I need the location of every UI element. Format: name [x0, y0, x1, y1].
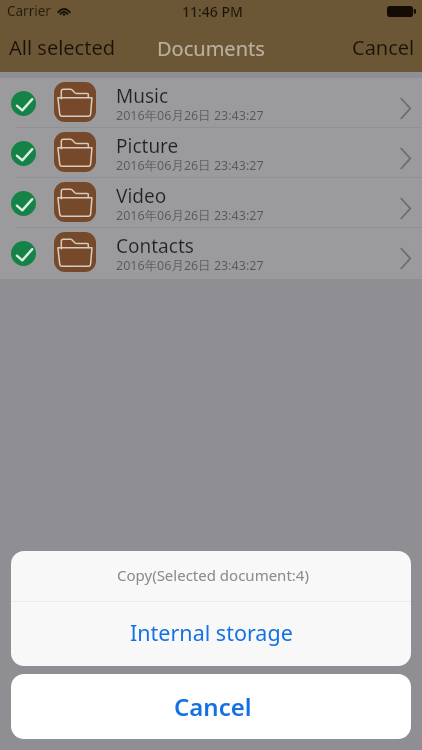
button[interactable]: Music — [0, 78, 422, 128]
staticText: Carrier — [7, 2, 51, 20]
staticText: Music — [116, 83, 169, 109]
button[interactable]: Picture — [0, 128, 422, 178]
button[interactable]: Contacts — [0, 228, 422, 278]
button[interactable]: Internal storage — [11, 602, 411, 666]
staticText: Internal storage — [130, 618, 293, 647]
button[interactable]: Cancel — [343, 25, 422, 70]
button[interactable]: Video — [0, 178, 422, 228]
staticText: All selected — [9, 34, 115, 61]
staticText: Copy(Selected document:4) — [117, 565, 309, 585]
staticText: Cancel — [352, 34, 415, 61]
staticText: Video — [116, 183, 167, 209]
button[interactable]: Cancel — [11, 674, 411, 739]
staticText: 2016年06月26日 23:43:27 — [116, 107, 264, 124]
staticText: Picture — [116, 133, 179, 159]
staticText: 11:46 PM — [182, 2, 243, 21]
staticText: Contacts — [116, 233, 194, 259]
staticText: 2016年06月26日 23:43:27 — [116, 157, 264, 174]
staticText: Cancel — [174, 690, 252, 723]
staticText: 2016年06月26日 23:43:27 — [116, 257, 264, 274]
button[interactable]: All selected — [0, 25, 124, 70]
staticText: 2016年06月26日 23:43:27 — [116, 207, 264, 224]
staticText: Documents — [157, 35, 265, 62]
